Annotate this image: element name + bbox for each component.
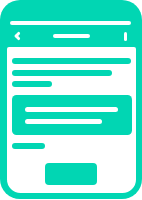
- button[interactable]: [12, 95, 132, 135]
- button[interactable]: More: [124, 32, 127, 41]
- button[interactable]: [25, 119, 102, 124]
- button[interactable]: [53, 34, 90, 38]
- button[interactable]: Back: [11, 28, 23, 43]
- button[interactable]: [12, 70, 112, 76]
- button[interactable]: [45, 163, 97, 185]
- button[interactable]: [25, 107, 118, 112]
- button[interactable]: [12, 58, 131, 64]
- button[interactable]: [12, 81, 52, 87]
- button[interactable]: [12, 143, 45, 149]
- button[interactable]: [10, 21, 131, 25]
